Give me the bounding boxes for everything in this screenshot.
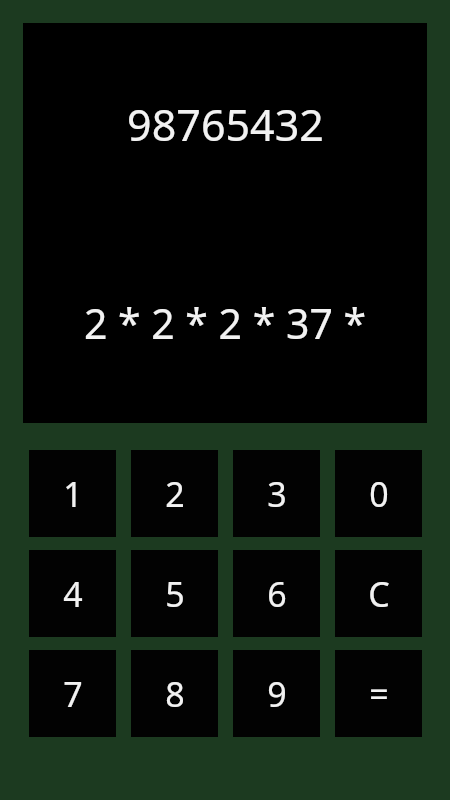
staticText: 98765432 [127,95,324,154]
button[interactable]: 6 [233,550,320,637]
staticText: 1 [63,471,83,517]
staticText: 2 * 2 * 2 * 37 * 333667 [27,295,423,351]
button[interactable]: 5 [131,550,218,637]
staticText: C [368,571,390,617]
staticText: 0 [369,471,389,517]
button[interactable]: = [335,650,422,737]
staticText: 4 [63,571,83,617]
button[interactable]: 2 [131,450,218,537]
button[interactable]: C [335,550,422,637]
button[interactable]: 4 [29,550,116,637]
staticText: 2 [165,471,185,517]
button[interactable]: 9 [233,650,320,737]
button[interactable]: 0 [335,450,422,537]
button[interactable]: 7 [29,650,116,737]
staticText: 3 [267,471,287,517]
staticText: = [369,671,389,717]
staticText: 6 [267,571,287,617]
staticText: 9 [267,671,287,717]
button[interactable]: 8 [131,650,218,737]
staticText: 5 [165,571,185,617]
staticText: 7 [63,671,83,717]
staticText: 8 [165,671,185,717]
button[interactable]: 1 [29,450,116,537]
button[interactable]: 3 [233,450,320,537]
